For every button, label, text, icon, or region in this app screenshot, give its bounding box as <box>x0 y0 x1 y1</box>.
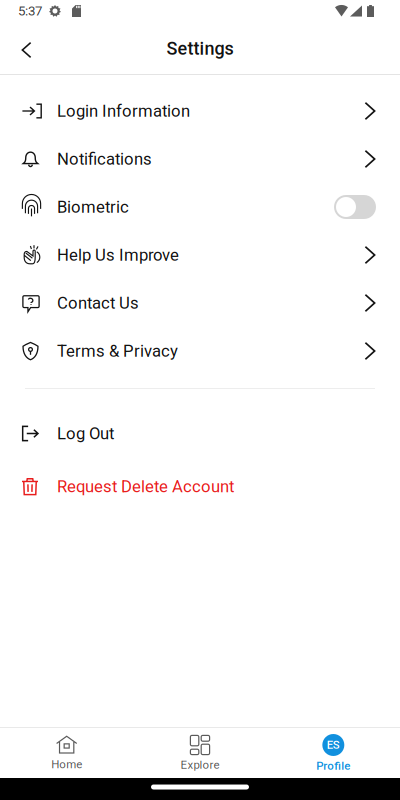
button[interactable]: Biometric <box>0 183 400 231</box>
button[interactable]: Back <box>0 28 53 72</box>
staticText: Terms & Privacy <box>57 341 178 361</box>
button[interactable]: Notifications <box>0 135 400 183</box>
button[interactable]: Request Delete Account <box>0 460 400 513</box>
button[interactable]: ES <box>267 734 400 772</box>
button[interactable]: Contact Us <box>0 279 400 327</box>
staticText: ES <box>327 738 340 752</box>
staticText: 5:37 <box>18 3 42 19</box>
staticText: Explore <box>180 758 219 771</box>
staticText: Request Delete Account <box>57 477 234 496</box>
staticText: Biometric <box>57 197 129 217</box>
staticText: Settings <box>166 38 233 59</box>
staticText: Profile <box>316 759 350 772</box>
staticText: Login Information <box>57 101 190 121</box>
staticText: Help Us Improve <box>57 245 179 265</box>
button[interactable]: Login Information <box>0 87 400 135</box>
staticText: Log Out <box>57 424 114 443</box>
button[interactable]: Terms & Privacy <box>0 327 400 375</box>
staticText: Home <box>51 757 82 771</box>
staticText: Contact Us <box>57 293 139 313</box>
button[interactable]: Help Us Improve <box>0 231 400 279</box>
staticText: Notifications <box>57 149 152 169</box>
button[interactable]: Log Out <box>0 407 400 460</box>
button[interactable]: Home <box>0 735 133 771</box>
button[interactable]: Explore <box>133 735 267 771</box>
